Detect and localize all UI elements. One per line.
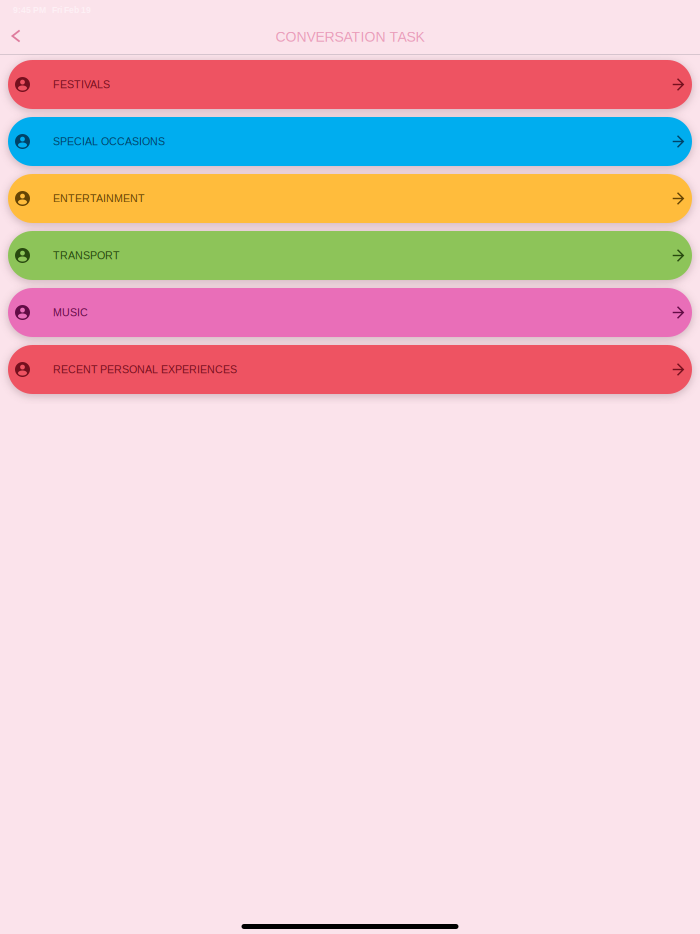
button[interactable]: ENTERTAINMENT bbox=[8, 174, 692, 223]
button[interactable]: RECENT PERSONAL EXPERIENCES bbox=[8, 345, 692, 394]
button[interactable]: FESTIVALS bbox=[8, 60, 692, 109]
button[interactable]: TRANSPORT bbox=[8, 231, 692, 280]
staticText: Fri Feb 19 bbox=[52, 5, 91, 15]
button[interactable]: Back bbox=[0, 20, 32, 54]
button[interactable]: SPECIAL OCCASIONS bbox=[8, 117, 692, 166]
staticText: MUSIC bbox=[53, 306, 88, 318]
staticText: RECENT PERSONAL EXPERIENCES bbox=[53, 363, 237, 375]
staticText: ENTERTAINMENT bbox=[53, 192, 145, 204]
staticText: FESTIVALS bbox=[53, 78, 110, 90]
staticText: 9:45 PM bbox=[13, 5, 46, 15]
button[interactable]: MUSIC bbox=[8, 288, 692, 337]
staticText: SPECIAL OCCASIONS bbox=[53, 135, 165, 147]
staticText: CONVERSATION TASK bbox=[275, 29, 424, 45]
staticText: TRANSPORT bbox=[53, 249, 120, 261]
